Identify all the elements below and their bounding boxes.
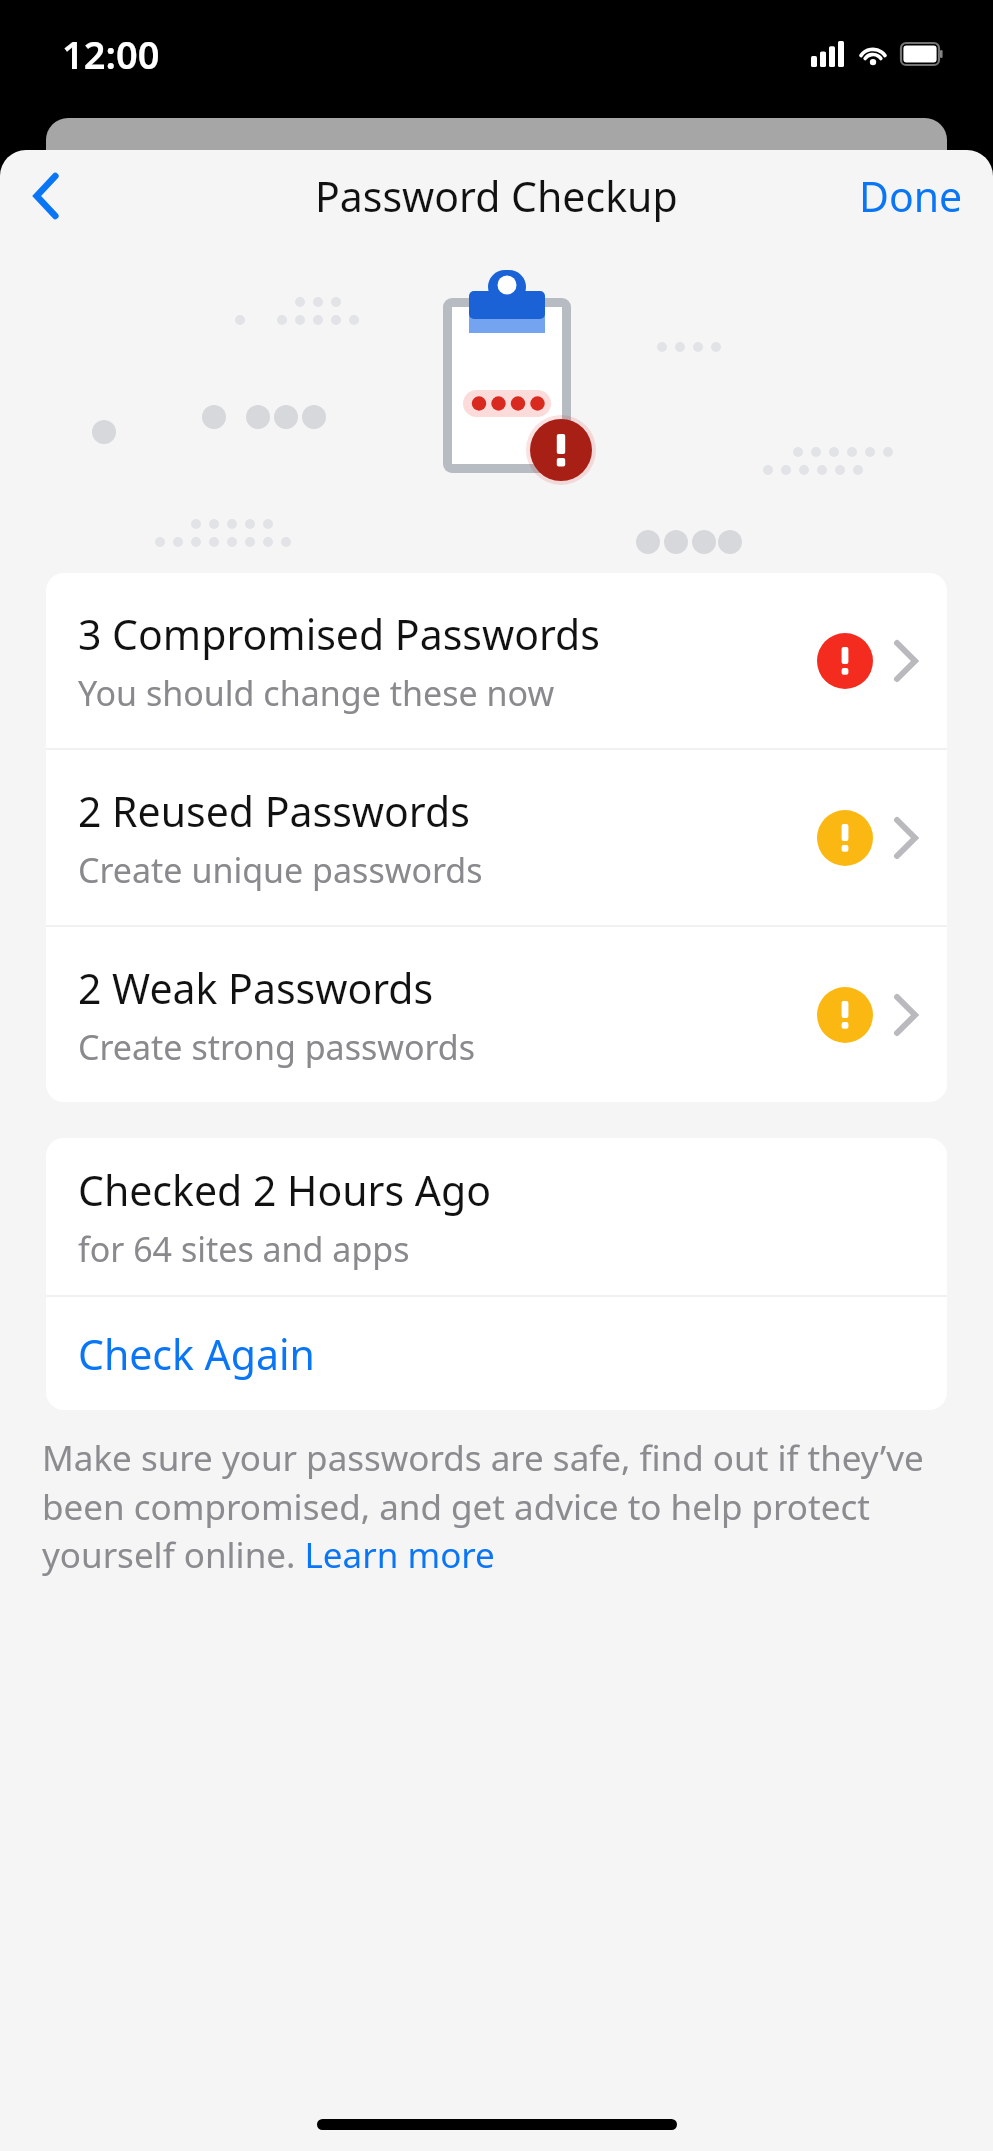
staticText: for 64 sites and apps <box>78 1226 410 1272</box>
staticText: 3 Compromised Passwords <box>78 606 600 662</box>
staticText: Check Again <box>78 1326 315 1382</box>
button[interactable]: 3 Compromised Passwords <box>46 573 947 748</box>
staticText: 2 Weak Passwords <box>78 960 434 1016</box>
staticText: You should change these now <box>78 670 555 716</box>
button[interactable]: Checked 2 Hours Ago <box>46 1138 947 1295</box>
staticText: Create unique passwords <box>78 847 483 893</box>
staticText: Make sure your passwords are safe, find … <box>42 1434 951 1578</box>
staticText: Done <box>859 168 963 224</box>
button[interactable]: 2 Weak Passwords <box>46 927 947 1102</box>
staticText: 2 Reused Passwords <box>78 783 470 839</box>
staticText: 12:00 <box>62 28 160 80</box>
staticText: Password Checkup <box>315 168 678 224</box>
button[interactable]: 2 Reused Passwords <box>46 750 947 925</box>
button[interactable]: Check Again <box>46 1297 947 1410</box>
staticText: Create strong passwords <box>78 1024 476 1070</box>
staticText: Checked 2 Hours Ago <box>78 1162 492 1218</box>
button[interactable]: Back <box>8 158 84 234</box>
button[interactable]: Done <box>829 154 993 238</box>
